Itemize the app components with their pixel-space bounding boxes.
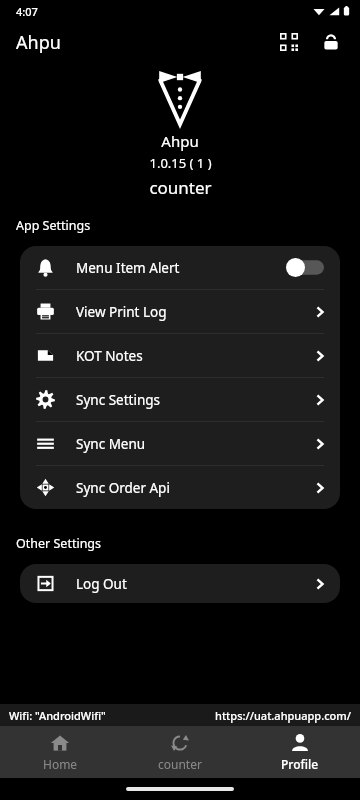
staticText: 4:07 <box>16 4 38 19</box>
staticText: Ahpu <box>161 131 199 151</box>
button[interactable]: Home <box>0 728 120 777</box>
staticText: https://uat.ahpuapp.com/ <box>215 708 351 723</box>
staticText: Sync Settings <box>76 391 160 409</box>
staticText: Ahpu <box>16 30 61 55</box>
button[interactable]: View Print Log <box>20 290 340 333</box>
button[interactable]: Log Out <box>20 564 340 603</box>
staticText: counter <box>158 756 202 772</box>
staticText: Log Out <box>76 575 127 593</box>
staticText: View Print Log <box>76 303 167 321</box>
staticText: 1.0.15 ( 1 ) <box>149 154 212 172</box>
staticText: Wifi: "AndroidWifi" <box>9 708 106 723</box>
staticText: Menu Item Alert <box>76 259 180 277</box>
staticText: Profile <box>281 756 319 772</box>
button[interactable]: KOT Notes <box>20 334 340 377</box>
button[interactable]: Lock <box>314 25 348 59</box>
button[interactable]: Sync Settings <box>20 378 340 421</box>
button[interactable]: Menu Item Alert <box>20 246 340 289</box>
button[interactable]: counter <box>120 728 240 777</box>
staticText: Sync Menu <box>76 435 146 453</box>
staticText: counter <box>149 176 212 199</box>
staticText: Home <box>43 756 78 772</box>
button[interactable]: Profile <box>240 728 360 777</box>
button[interactable]: Scan QR code <box>272 25 306 59</box>
staticText: KOT Notes <box>76 347 143 365</box>
button[interactable]: Sync Order Api <box>20 466 340 509</box>
staticText: Other Settings <box>16 535 102 552</box>
staticText: App Settings <box>16 217 91 234</box>
button[interactable]: Menu Item Alert toggle <box>286 258 324 277</box>
button[interactable]: Sync Menu <box>20 422 340 465</box>
staticText: Sync Order Api <box>76 479 170 497</box>
